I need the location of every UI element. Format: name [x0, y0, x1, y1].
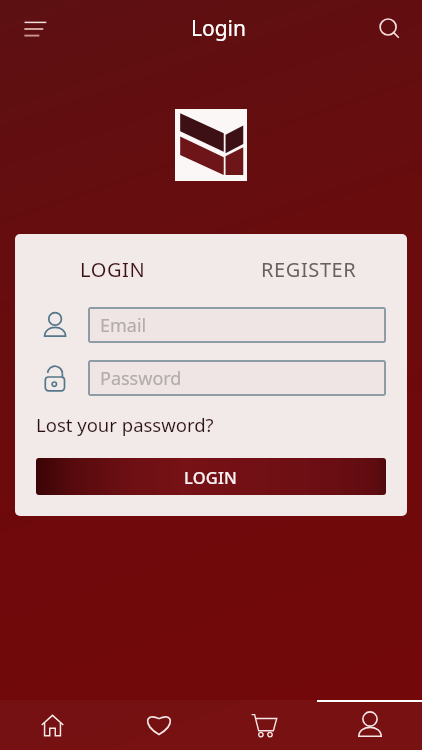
button[interactable]: Cart [211, 700, 316, 750]
button[interactable]: Password [88, 360, 386, 396]
button[interactable]: Favorites [106, 700, 211, 750]
button[interactable]: LOGIN [15, 256, 211, 283]
staticText: Login [191, 14, 247, 43]
button[interactable]: Email [88, 307, 386, 343]
staticText: REGISTER [261, 256, 357, 283]
staticText: LOGIN [184, 466, 238, 488]
button[interactable]: Menu [10, 6, 54, 50]
button[interactable]: LOGIN [36, 458, 386, 495]
button[interactable]: Search [367, 6, 411, 50]
button[interactable]: REGISTER [211, 256, 407, 283]
staticText: Password [100, 366, 182, 391]
staticText: LOGIN [80, 256, 146, 283]
button[interactable]: Profile [317, 700, 422, 750]
button[interactable]: Lost your password? [36, 412, 214, 437]
staticText: Email [100, 313, 147, 338]
button[interactable]: Home [0, 700, 105, 750]
